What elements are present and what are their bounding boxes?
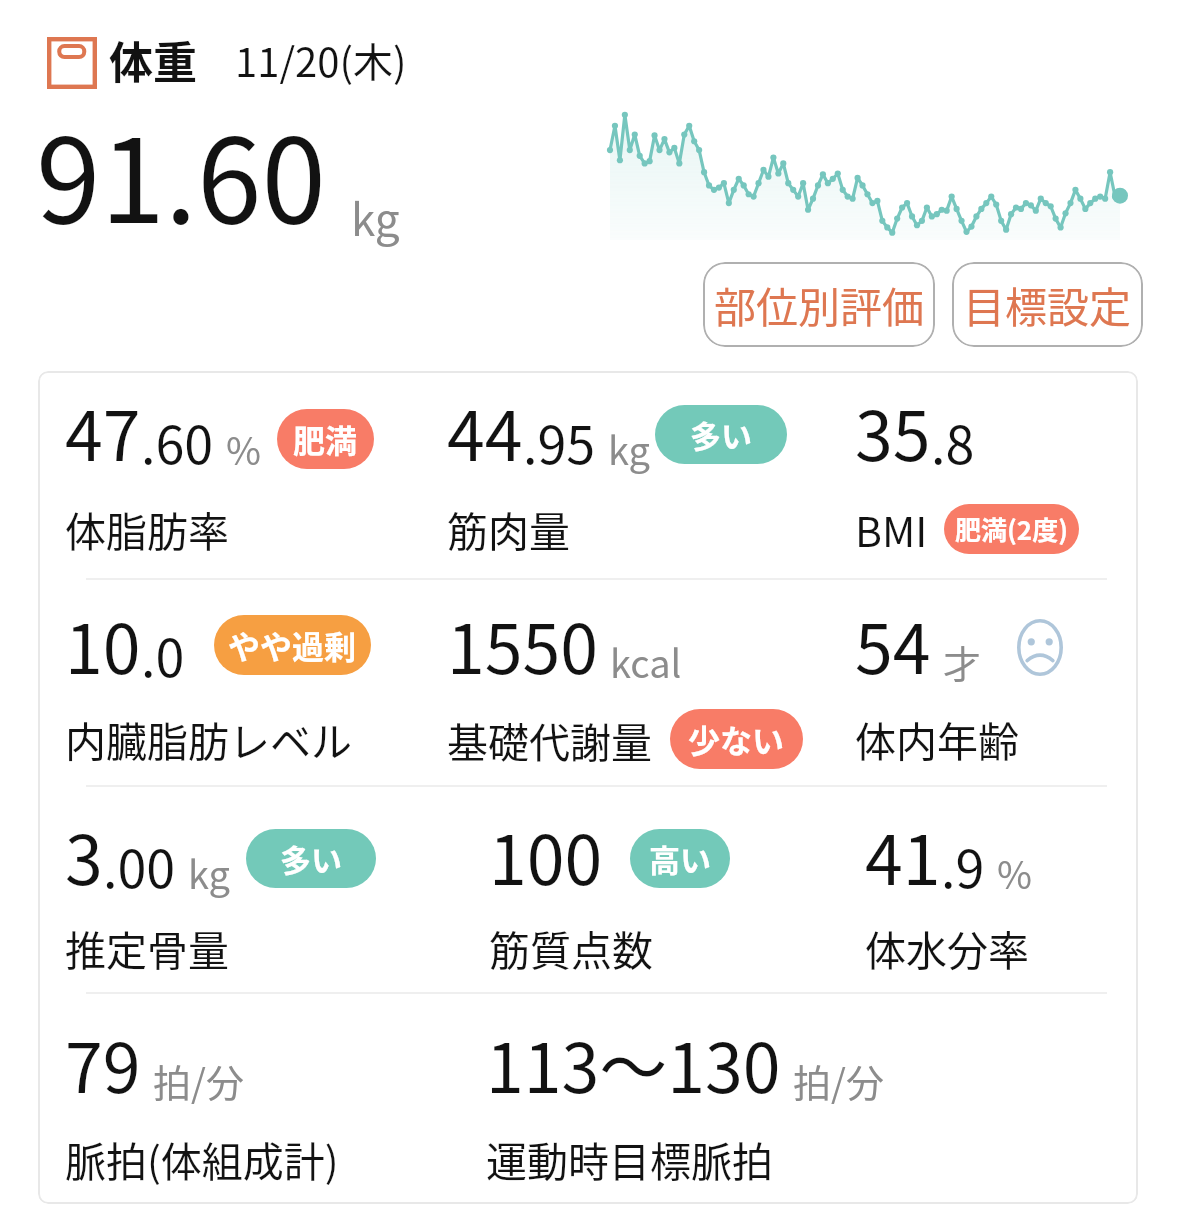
staticText: 少ない bbox=[688, 716, 785, 762]
staticText: 体重 bbox=[109, 28, 197, 92]
staticText: やや過剰 bbox=[228, 622, 357, 668]
staticText: 多い bbox=[690, 412, 752, 457]
button[interactable]: 部位別評価 bbox=[703, 262, 935, 347]
staticText: 54 bbox=[855, 595, 931, 693]
staticText: 才 bbox=[943, 634, 982, 689]
staticText: 高い bbox=[649, 836, 711, 881]
staticText: 拍/分 bbox=[153, 1053, 244, 1108]
staticText: kg bbox=[351, 185, 400, 249]
staticText: 79 bbox=[65, 1014, 141, 1112]
other: Body age status bbox=[1017, 619, 1063, 676]
staticText: .8 bbox=[931, 404, 975, 479]
staticText: 筋質点数 bbox=[489, 918, 653, 977]
staticText: 脈拍(体組成計) bbox=[65, 1129, 339, 1188]
staticText: 11/20(木) bbox=[235, 31, 407, 89]
staticText: 35 bbox=[855, 382, 931, 480]
staticText: 基礎代謝量 bbox=[447, 710, 652, 769]
staticText: 91.60 bbox=[36, 88, 326, 256]
staticText: 10 bbox=[65, 595, 141, 693]
staticText: 1550 bbox=[447, 595, 598, 693]
staticText: 推定骨量 bbox=[65, 918, 229, 977]
staticText: 3 bbox=[65, 806, 103, 904]
button[interactable]: 113〜130 bbox=[420, 994, 828, 1199]
button[interactable]: 54 bbox=[828, 580, 1138, 785]
button[interactable]: 100 bbox=[420, 787, 828, 992]
staticText: 内臓脂肪レベル bbox=[65, 709, 352, 768]
staticText: 体内年齢 bbox=[855, 709, 1019, 768]
staticText: kcal bbox=[610, 634, 682, 689]
staticText: 47 bbox=[65, 382, 141, 480]
button[interactable]: 3 bbox=[38, 787, 420, 992]
staticText: 肥満 bbox=[293, 416, 358, 462]
staticText: .95 bbox=[523, 404, 596, 479]
button[interactable]: 目標設定 bbox=[952, 262, 1143, 347]
staticText: 113〜130 bbox=[486, 1014, 781, 1112]
staticText: 100 bbox=[489, 806, 603, 904]
button[interactable]: 41 bbox=[828, 787, 1138, 992]
button[interactable]: 47 bbox=[38, 371, 420, 578]
staticText: 44 bbox=[447, 382, 523, 480]
staticText: kg bbox=[608, 421, 650, 476]
staticText: .00 bbox=[103, 828, 176, 903]
staticText: 41 bbox=[865, 806, 941, 904]
staticText: .0 bbox=[141, 617, 185, 692]
staticText: % bbox=[997, 845, 1032, 900]
button[interactable]: 79 bbox=[38, 994, 420, 1199]
staticText: 目標設定 bbox=[963, 274, 1132, 335]
staticText: 部位別評価 bbox=[714, 274, 925, 335]
button[interactable]: 1550 bbox=[420, 580, 828, 785]
staticText: % bbox=[226, 421, 261, 476]
staticText: 肥満(2度) bbox=[955, 510, 1068, 548]
staticText: .60 bbox=[141, 404, 214, 479]
staticText: 運動時目標脈拍 bbox=[486, 1129, 773, 1188]
other: Weight scale bbox=[47, 32, 97, 89]
button[interactable]: 10 bbox=[38, 580, 420, 785]
staticText: 筋肉量 bbox=[447, 499, 570, 558]
button[interactable]: 44 bbox=[420, 371, 828, 578]
staticText: 拍/分 bbox=[793, 1053, 884, 1108]
staticText: 体水分率 bbox=[865, 918, 1029, 977]
staticText: 多い bbox=[280, 836, 342, 881]
staticText: .9 bbox=[941, 828, 985, 903]
staticText: 体脂肪率 bbox=[65, 499, 229, 558]
staticText: BMI bbox=[855, 499, 928, 558]
button[interactable]: 35 bbox=[828, 371, 1138, 578]
staticText: kg bbox=[188, 845, 230, 900]
